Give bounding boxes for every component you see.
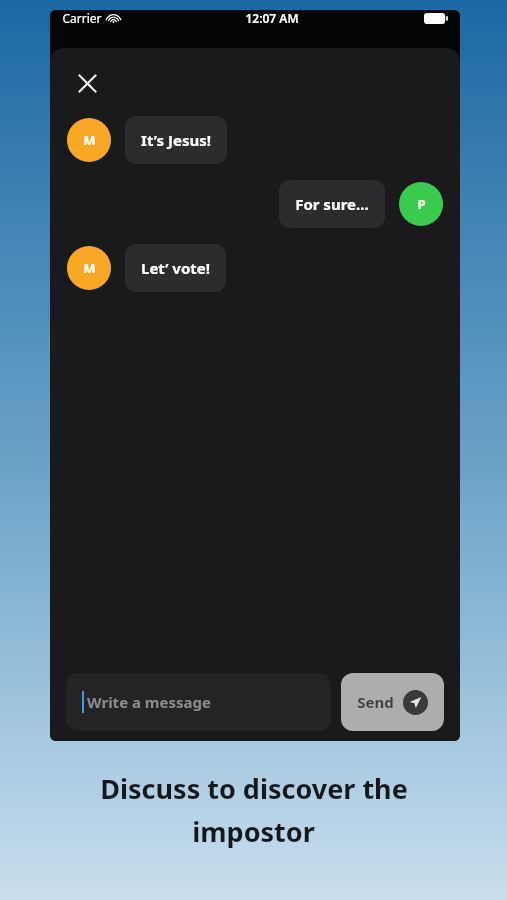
staticText: Send [357,692,394,712]
staticText: 12:07 AM [245,10,299,26]
staticText: For sure… [295,194,369,214]
staticText: It’s Jesus! [141,130,211,150]
button[interactable]: Write a message [66,673,331,731]
staticText: Write a message [87,692,211,712]
staticText: Discuss to discover the [100,770,408,807]
button[interactable]: Close [68,64,106,102]
staticText: M [83,131,96,149]
button[interactable]: Let’ vote! [125,244,226,292]
button[interactable]: Send [341,673,444,731]
staticText: M [83,259,96,277]
button[interactable]: It’s Jesus! [125,116,227,164]
staticText: P [417,195,426,213]
button[interactable]: For sure… [279,180,385,228]
staticText: Carrier [62,10,102,26]
staticText: impostor [192,813,315,850]
staticText: Let’ vote! [141,258,210,278]
